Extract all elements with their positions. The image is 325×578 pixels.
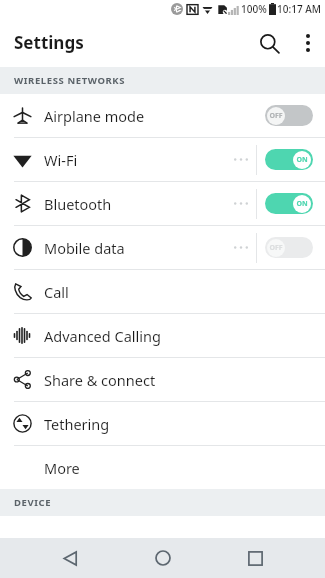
staticText: Wi-Fi: [44, 150, 226, 170]
staticText: 10:17 AM: [277, 2, 321, 16]
button[interactable]: Advanced Calling: [0, 314, 325, 357]
staticText: WIRELESS NETWORKS: [14, 74, 126, 87]
button[interactable]: Airplane mode toggle: [265, 105, 313, 126]
button[interactable]: More: [0, 446, 325, 489]
button[interactable]: Mobile data toggle: [265, 237, 313, 258]
staticText: Call: [44, 282, 309, 302]
staticText: OFF: [269, 111, 283, 121]
staticText: ON: [296, 155, 308, 165]
button[interactable]: Bluetooth toggle: [265, 193, 313, 214]
button[interactable]: Search: [247, 21, 291, 65]
staticText: Airplane mode: [44, 106, 257, 126]
button[interactable]: Share & connect: [0, 358, 325, 401]
button[interactable]: Home: [141, 538, 185, 578]
button[interactable]: Mobile data options: [226, 226, 256, 269]
button[interactable]: Wi-Fi: [0, 138, 325, 181]
staticText: More: [44, 458, 309, 478]
button[interactable]: Bluetooth: [0, 182, 325, 225]
staticText: 100%: [241, 2, 267, 16]
staticText: Advanced Calling: [44, 326, 309, 346]
staticText: DEVICE: [14, 496, 52, 509]
staticText: OFF: [269, 243, 283, 253]
staticText: ON: [296, 199, 308, 209]
button[interactable]: Back: [48, 538, 92, 578]
button[interactable]: Tethering: [0, 402, 325, 445]
button[interactable]: Recent apps: [233, 538, 277, 578]
staticText: Bluetooth: [44, 194, 226, 214]
button[interactable]: More options: [291, 26, 325, 60]
staticText: Settings: [14, 31, 84, 54]
button[interactable]: Wi-Fi toggle: [265, 149, 313, 170]
button[interactable]: Wi-Fi options: [226, 138, 256, 181]
button[interactable]: Bluetooth options: [226, 182, 256, 225]
staticText: Share & connect: [44, 370, 309, 390]
button[interactable]: Mobile data: [0, 226, 325, 269]
button[interactable]: Airplane mode: [0, 94, 325, 137]
button[interactable]: Call: [0, 270, 325, 313]
staticText: Tethering: [44, 414, 309, 434]
staticText: Mobile data: [44, 238, 226, 258]
